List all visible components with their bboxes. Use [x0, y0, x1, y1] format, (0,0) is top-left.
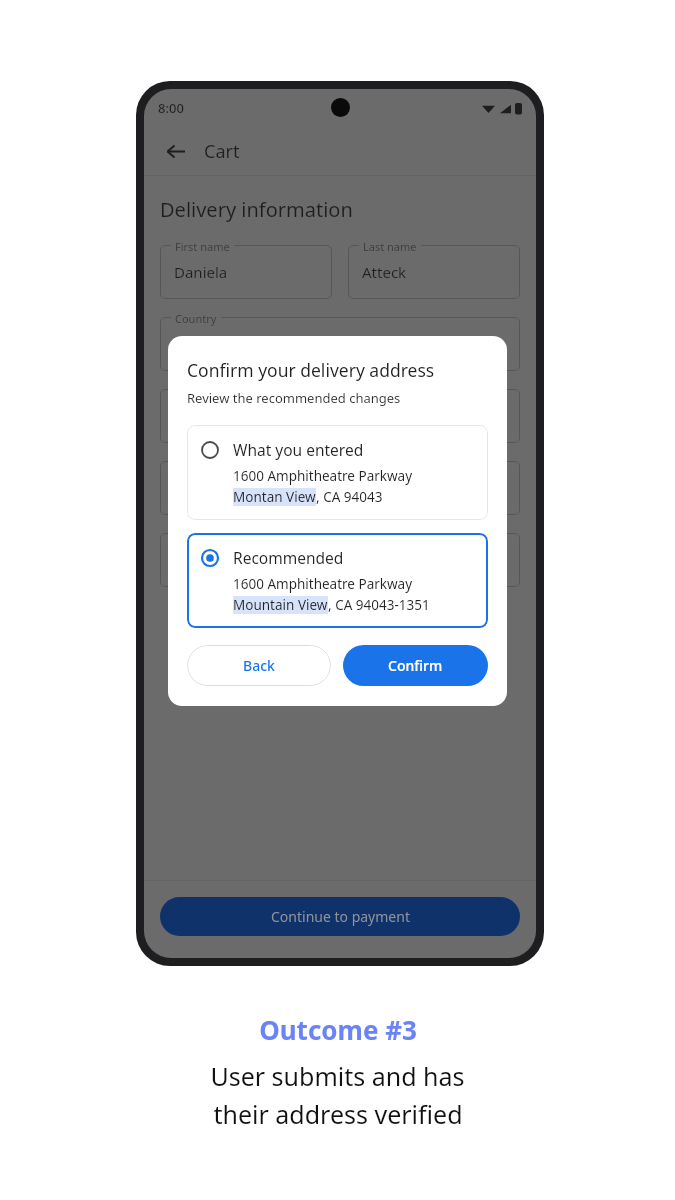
staticText: Confirm your delivery address	[187, 358, 435, 382]
staticText: Atteck	[362, 262, 407, 282]
button[interactable]: What you entered	[187, 425, 488, 520]
button[interactable]: Back	[160, 136, 190, 166]
button[interactable]: Continue to payment	[160, 897, 520, 936]
staticText: Last name	[363, 239, 417, 254]
button[interactable]: Back	[187, 645, 331, 686]
staticText: 8:00	[158, 99, 184, 117]
staticText: 1600 Amphitheatre Parkway	[233, 467, 413, 485]
button[interactable]: Confirm	[343, 645, 488, 686]
staticText: First name	[175, 239, 230, 254]
staticText: Review the recommended changes	[187, 389, 401, 407]
staticText: User submits and has	[210, 1059, 465, 1093]
staticText: Recommended	[233, 547, 344, 568]
staticText: Confirm	[388, 656, 443, 675]
staticText: their address verified	[213, 1097, 463, 1131]
staticText: Cart	[204, 139, 240, 164]
staticText: Daniela	[174, 262, 228, 282]
staticText: Montan View	[233, 488, 316, 506]
staticText: Continue to payment	[271, 907, 410, 926]
staticText: Country	[175, 311, 217, 326]
staticText: Mountain View	[233, 596, 328, 614]
staticText: , CA 94043-1351	[328, 596, 430, 614]
staticText: Outcome #3	[259, 1012, 417, 1047]
button[interactable]: Recommended	[187, 533, 488, 628]
staticText: What you entered	[233, 439, 364, 460]
staticText: , CA 94043	[316, 488, 383, 506]
staticText: Delivery information	[160, 196, 353, 223]
staticText: Back	[243, 656, 275, 675]
staticText: 1600 Amphitheatre Parkway	[233, 575, 413, 593]
